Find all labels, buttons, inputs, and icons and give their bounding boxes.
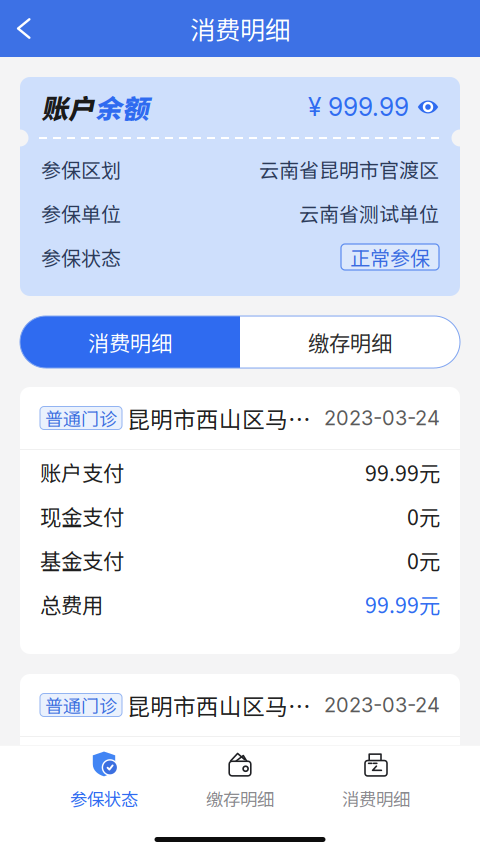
- staticText: 2023-03-24: [324, 693, 440, 717]
- staticText: 现金支付: [40, 788, 124, 818]
- staticText: 参保区划: [41, 154, 121, 183]
- staticText: 账户: [41, 88, 95, 126]
- staticText: ¥ 999.99: [308, 92, 409, 122]
- button[interactable]: 消费明细: [20, 316, 240, 368]
- staticText: 参保状态: [41, 242, 121, 271]
- button[interactable]: 参保状态: [36, 745, 172, 807]
- staticText: 99.99元: [365, 457, 440, 487]
- button[interactable]: 缴存明细: [172, 745, 308, 807]
- staticText: 消费明细: [190, 10, 290, 47]
- staticText: 昆明市西山区马街…: [127, 402, 316, 434]
- button[interactable]: 返回: [0, 0, 50, 57]
- staticText: 账户支付: [40, 457, 124, 487]
- staticText: 缴存明细: [206, 786, 274, 811]
- staticText: 99.99元: [365, 589, 440, 619]
- button[interactable]: 消费明细: [308, 745, 444, 807]
- staticText: 参保状态: [70, 786, 138, 811]
- staticText: 普通门诊: [45, 692, 117, 718]
- staticText: 0元: [407, 545, 440, 575]
- button[interactable]: 缴存明细: [240, 316, 460, 368]
- staticText: 云南省测试单位: [299, 198, 439, 227]
- staticText: 参保单位: [41, 198, 121, 227]
- staticText: 0元: [407, 501, 440, 531]
- staticText: 0元: [407, 788, 440, 818]
- staticText: 普通门诊: [45, 405, 117, 431]
- staticText: 正常参保: [350, 242, 430, 271]
- staticText: 账户支付: [40, 744, 124, 774]
- staticText: 2023-03-24: [324, 406, 440, 430]
- staticText: 基金支付: [40, 545, 124, 575]
- staticText: 消费明细: [342, 786, 410, 811]
- staticText: 99.99元: [365, 744, 440, 774]
- staticText: 云南省昆明市官渡区: [259, 154, 439, 183]
- staticText: 消费明细: [88, 327, 172, 357]
- staticText: 总费用: [40, 589, 103, 619]
- staticText: 现金支付: [40, 501, 124, 531]
- staticText: 昆明市西山区马街…: [127, 689, 316, 721]
- staticText: 余额: [95, 88, 149, 126]
- staticText: 缴存明细: [308, 327, 392, 357]
